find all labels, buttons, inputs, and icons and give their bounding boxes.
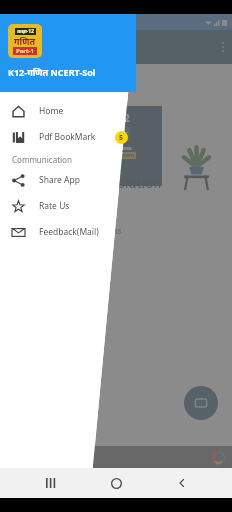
- staticText: Home: [39, 105, 64, 117]
- button[interactable]: Pdf BookMark: [0, 124, 136, 150]
- staticText: Pdf BookMark: [39, 131, 96, 143]
- button[interactable]: Recent apps: [36, 468, 66, 498]
- staticText: Part-1: [16, 47, 34, 55]
- staticText: K12-गणित NCERT-Sol: [8, 66, 96, 78]
- staticText: 01:08: [6, 17, 27, 28]
- button[interactable]: Rate Us: [0, 193, 136, 219]
- button[interactable]: Share App: [0, 167, 136, 193]
- staticText: 5: [119, 133, 124, 143]
- staticText: ns: [112, 224, 122, 236]
- staticText: Share App: [39, 174, 80, 186]
- staticText: Feedback(Mail): [39, 226, 99, 238]
- button[interactable]: Back: [167, 468, 197, 498]
- staticText: ा-12: [104, 110, 130, 125]
- staticText: Solution: [110, 174, 162, 192]
- staticText: कक्षा-12: [17, 28, 34, 35]
- button[interactable]: Home: [101, 468, 131, 498]
- button[interactable]: Home: [0, 98, 136, 124]
- staticText: Solutions: [104, 144, 132, 152]
- staticText: गणित: [14, 35, 36, 47]
- staticText: Rate Us: [39, 200, 70, 212]
- staticText: Communication: [12, 154, 72, 165]
- button[interactable]: Feedback(Mail): [0, 219, 136, 245]
- staticText: शास्त्र: [106, 127, 128, 141]
- staticText: d Questions: [105, 152, 135, 159]
- button[interactable]: Switch part: [184, 386, 218, 420]
